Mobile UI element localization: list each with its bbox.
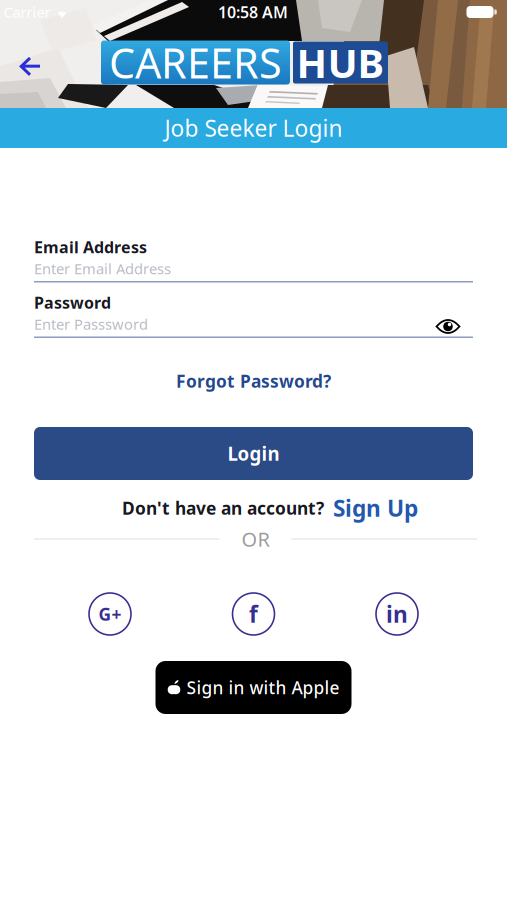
staticText: Password	[34, 292, 111, 313]
button[interactable]: Enter Email Address	[34, 262, 473, 282]
staticText: HUB	[296, 36, 384, 89]
staticText: Enter Email Address	[34, 259, 171, 278]
button[interactable]: Enter Passsword	[34, 317, 473, 338]
staticText: Email Address	[34, 236, 147, 258]
button[interactable]: in	[376, 593, 418, 635]
staticText: Login	[227, 441, 279, 466]
button[interactable]	[6, 57, 44, 77]
staticText: G+	[98, 602, 121, 625]
button[interactable]: Sign in with Apple	[155, 661, 351, 714]
button[interactable]: Forgot Password?	[176, 372, 331, 390]
staticText: f	[249, 599, 258, 629]
button[interactable]: G+	[89, 593, 131, 635]
staticText: CAREERS	[109, 35, 282, 90]
staticText: Carrier	[3, 2, 50, 22]
staticText: 10:58 AM	[218, 1, 288, 23]
button[interactable]: f	[232, 593, 274, 635]
staticText: in	[386, 599, 408, 629]
button[interactable]: Login	[34, 427, 473, 480]
button[interactable]: Sign Up	[333, 493, 418, 523]
staticText: Don't have an account?	[122, 496, 324, 519]
staticText: Sign in with Apple	[186, 676, 339, 699]
staticText: Forgot Password?	[176, 369, 331, 392]
staticText: Sign Up	[333, 493, 418, 523]
staticText: Job Seeker Login	[164, 113, 342, 143]
staticText: OR	[241, 526, 269, 552]
staticText: Enter Passsword	[34, 314, 148, 334]
